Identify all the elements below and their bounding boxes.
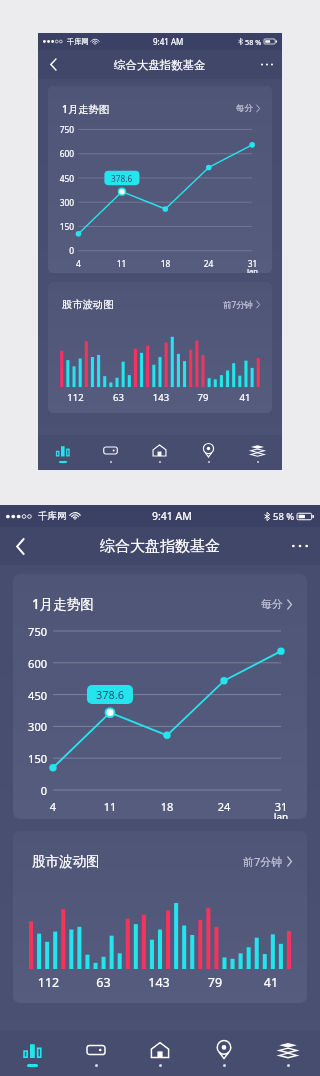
staticText: 1月走势图 <box>32 595 94 613</box>
staticText: 112 <box>21 974 76 991</box>
button[interactable]: 每分 <box>259 594 294 614</box>
button[interactable]: 股市波动图 <box>48 282 272 413</box>
staticText: 1月走势图 <box>62 102 110 116</box>
button[interactable]: 1月走势图 <box>13 574 307 819</box>
staticText: 79 <box>182 391 224 404</box>
staticText: 股市波动图 <box>32 853 100 870</box>
button[interactable]: 前7分钟 <box>221 297 262 312</box>
staticText: 每分 <box>236 103 253 114</box>
button[interactable]: Statistics <box>0 1030 64 1076</box>
button[interactable]: 1月走势图 <box>48 86 272 273</box>
staticText: 24 <box>210 799 238 814</box>
staticText: 4 <box>39 799 67 814</box>
button[interactable]: Wallet <box>86 435 135 470</box>
staticText: 24 <box>198 258 219 269</box>
staticText: 450 <box>19 688 47 703</box>
button[interactable]: More options <box>280 527 320 565</box>
staticText: 千库网 <box>38 510 67 522</box>
staticText: 41 <box>224 391 266 404</box>
staticText: 9:41 AM <box>153 36 184 47</box>
staticText: 58 % <box>245 37 262 47</box>
button[interactable]: More options <box>251 50 282 79</box>
button[interactable]: Statistics <box>38 435 86 470</box>
staticText: Jan <box>242 266 263 273</box>
staticText: Jan <box>267 810 295 819</box>
staticText: 11 <box>111 258 132 269</box>
staticText: 150 <box>53 221 74 232</box>
staticText: 112 <box>54 391 97 404</box>
button[interactable]: Layers <box>233 435 282 470</box>
button[interactable]: Layers <box>256 1030 320 1076</box>
staticText: 综合大盘指数基金 <box>100 537 220 556</box>
staticText: 750 <box>19 624 47 639</box>
staticText: 18 <box>153 799 181 814</box>
staticText: 600 <box>19 656 47 671</box>
staticText: 股市波动图 <box>62 298 114 311</box>
staticText: 18 <box>155 258 176 269</box>
staticText: 前7分钟 <box>243 854 283 869</box>
staticText: 600 <box>53 148 74 159</box>
staticText: 9:41 AM <box>152 509 192 523</box>
button[interactable]: 每分 <box>234 101 262 116</box>
staticText: 0 <box>53 245 74 256</box>
staticText: 378.6 <box>96 687 125 702</box>
staticText: 11 <box>96 799 124 814</box>
staticText: 41 <box>243 974 299 991</box>
button[interactable]: Location <box>184 435 233 470</box>
button[interactable]: Back <box>38 50 69 79</box>
staticText: 143 <box>140 391 182 404</box>
staticText: 63 <box>76 974 131 991</box>
staticText: 千库网 <box>67 37 89 46</box>
staticText: 31 <box>242 258 263 269</box>
staticText: 79 <box>187 974 243 991</box>
button[interactable]: 前7分钟 <box>241 851 294 872</box>
button[interactable]: Wallet <box>64 1030 128 1076</box>
staticText: 4 <box>68 258 89 269</box>
staticText: 750 <box>53 124 74 135</box>
button[interactable]: Home <box>135 435 184 470</box>
staticText: 143 <box>131 974 187 991</box>
staticText: 综合大盘指数基金 <box>114 58 206 72</box>
staticText: 58 % <box>273 510 295 523</box>
button[interactable]: Location <box>192 1030 256 1076</box>
staticText: 450 <box>53 173 74 184</box>
button[interactable]: Back <box>0 527 40 565</box>
button[interactable]: Home <box>128 1030 192 1076</box>
staticText: 150 <box>19 751 47 766</box>
staticText: 378.6 <box>111 173 133 184</box>
staticText: 31 <box>267 799 295 814</box>
staticText: 0 <box>19 783 47 798</box>
staticText: 300 <box>19 719 47 734</box>
staticText: 前7分钟 <box>223 299 253 310</box>
staticText: 63 <box>97 391 140 404</box>
staticText: 300 <box>53 197 74 208</box>
staticText: 每分 <box>261 597 283 611</box>
button[interactable]: 股市波动图 <box>13 831 307 1003</box>
